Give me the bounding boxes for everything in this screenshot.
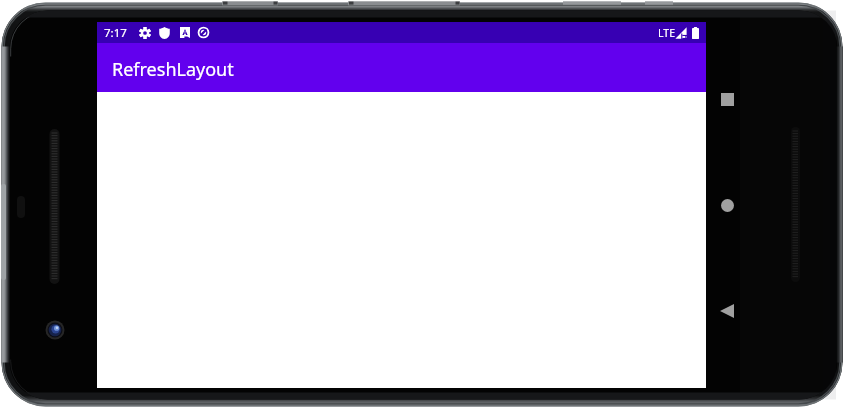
button[interactable]: Back <box>720 304 734 318</box>
staticText: 7:17 <box>104 25 127 41</box>
staticText: RefreshLayout <box>112 57 234 82</box>
button[interactable]: Home <box>721 199 734 212</box>
staticText: LTE <box>658 26 675 40</box>
